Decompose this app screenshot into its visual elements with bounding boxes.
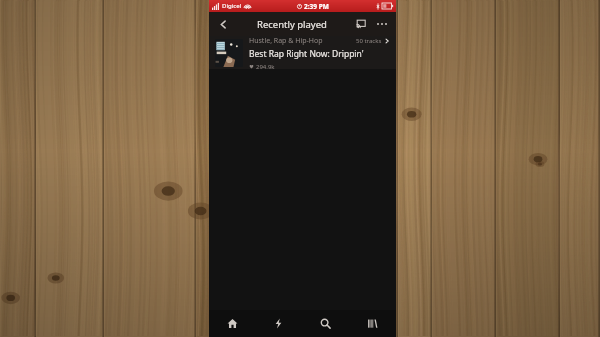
staticText: Best Rap Right Now: Drippin' <box>249 48 364 60</box>
staticText: 2:39 PM <box>304 2 329 11</box>
staticText: Digicel <box>222 2 242 10</box>
staticText: Recently played <box>257 18 327 31</box>
button[interactable]: More options <box>374 16 390 32</box>
staticText: 294.9k <box>256 63 275 69</box>
button[interactable]: Library <box>349 310 396 337</box>
button[interactable]: Search <box>302 310 349 337</box>
button[interactable]: Back <box>215 16 231 32</box>
button[interactable]: Cast <box>353 16 369 32</box>
staticText: 50 tracks <box>356 37 382 45</box>
button[interactable]: Hustle, Rap & Hip-Hop <box>209 36 396 69</box>
staticText: Hustle, Rap & Hip-Hop <box>249 36 323 46</box>
button[interactable]: Trending <box>255 310 302 337</box>
button[interactable]: Home <box>209 310 255 337</box>
